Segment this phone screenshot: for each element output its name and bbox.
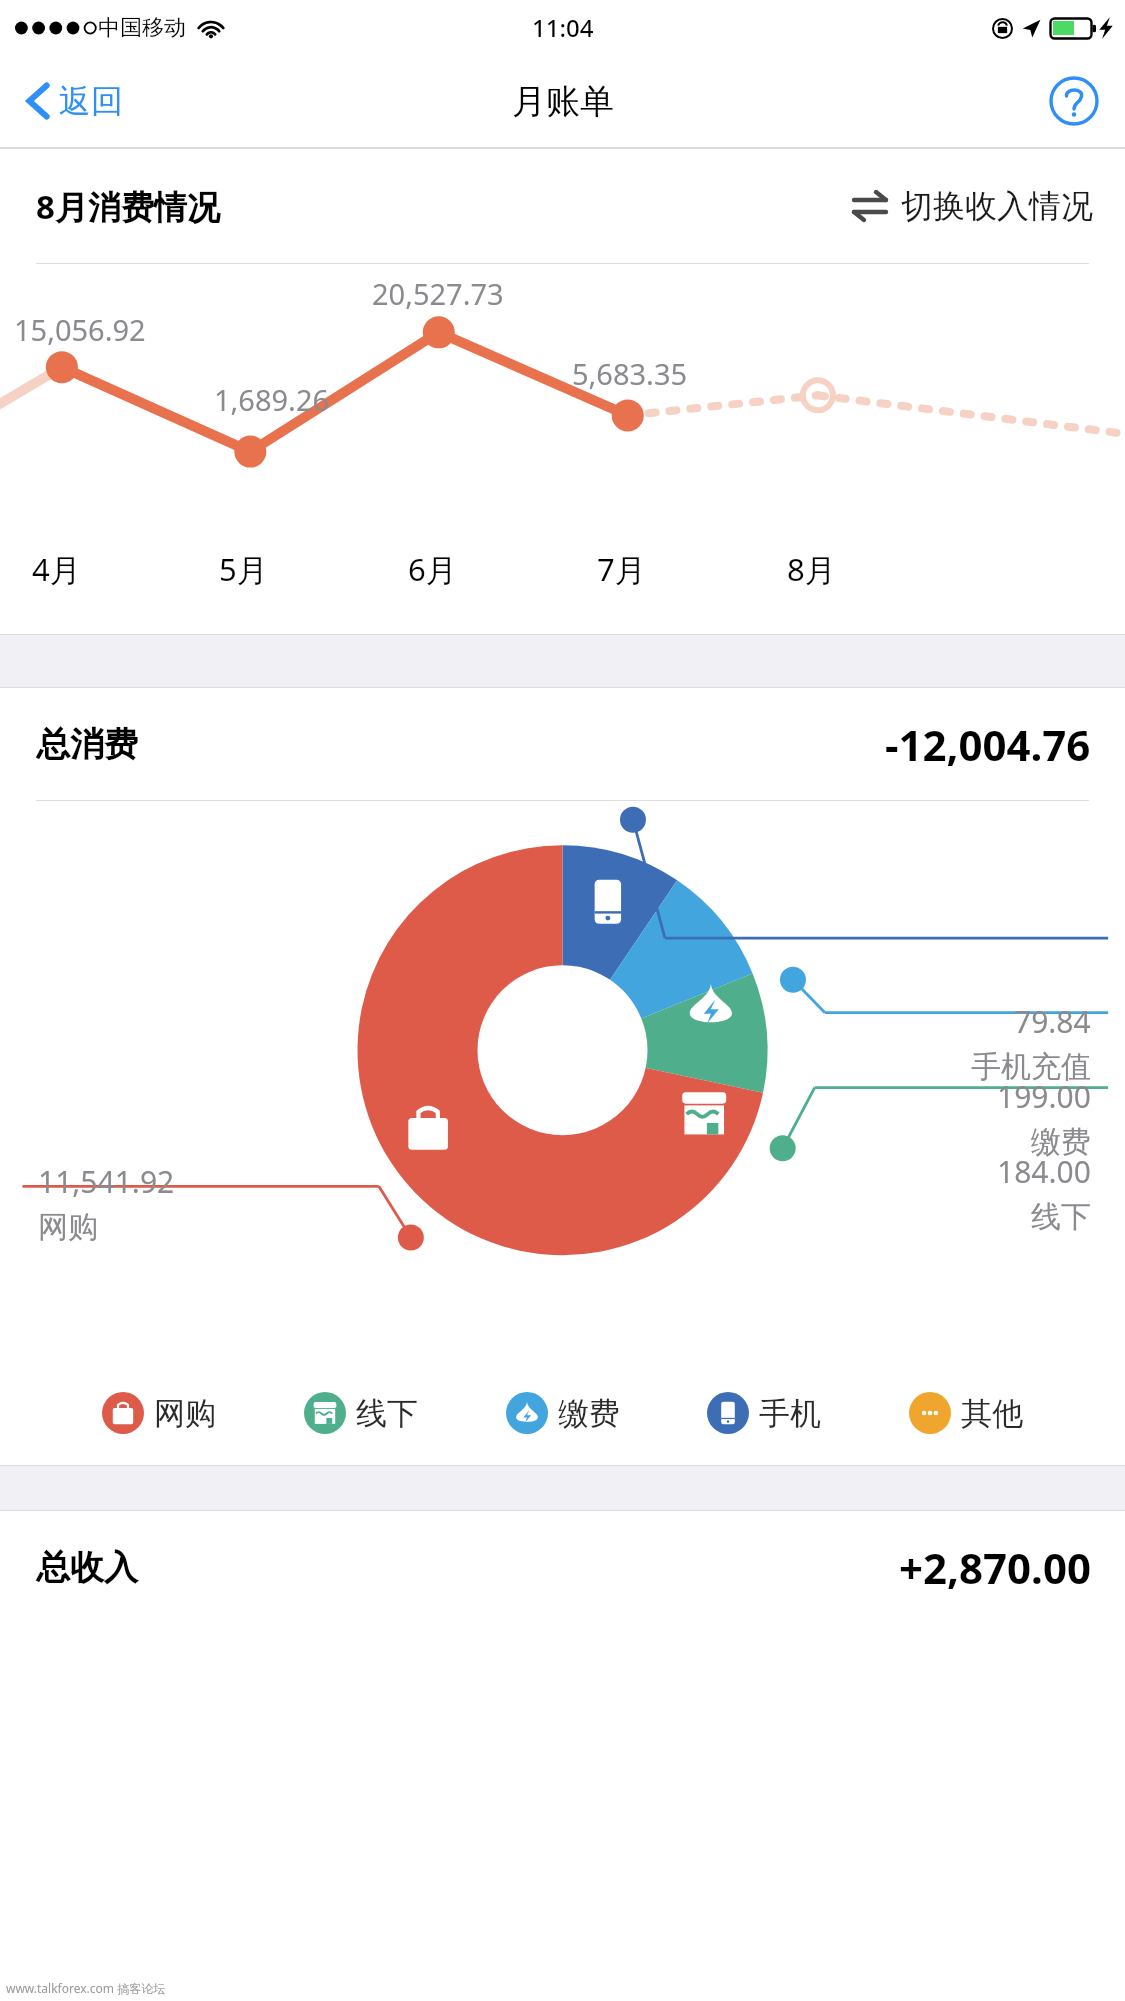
staticText: 5月 — [219, 548, 268, 590]
staticText: 手机 — [759, 1394, 821, 1433]
button[interactable]: 缴费 — [502, 1382, 624, 1444]
staticText: 8月 — [787, 548, 836, 590]
staticText: 缴费 — [558, 1394, 620, 1433]
staticText: 网购 — [38, 1208, 98, 1246]
staticText: 11,541.92 — [38, 1161, 175, 1202]
staticText: 20,527.73 — [372, 274, 504, 313]
button[interactable]: 网购 — [98, 1382, 220, 1444]
staticText: +2,870.00 — [899, 1539, 1091, 1596]
staticText: 其他 — [961, 1394, 1023, 1433]
button[interactable]: 返回 — [0, 70, 141, 132]
staticText: -12,004.76 — [885, 716, 1091, 773]
staticText: 线下 — [1031, 1198, 1091, 1236]
staticText: 15,056.92 — [14, 310, 146, 349]
button[interactable]: 线下 — [300, 1382, 422, 1444]
button[interactable]: 其他 — [905, 1382, 1027, 1444]
staticText: 11:04 — [532, 11, 594, 44]
staticText: 中国移动 — [98, 14, 186, 42]
staticText: 199.00 — [997, 1076, 1091, 1117]
staticText: 7月 — [597, 548, 646, 590]
staticText: 月账单 — [512, 80, 614, 123]
button[interactable]: 手机 — [703, 1382, 825, 1444]
staticText: 返回 — [59, 81, 123, 121]
staticText: 线下 — [356, 1394, 418, 1433]
staticText: 总收入 — [36, 1546, 138, 1589]
staticText: 4月 — [32, 548, 81, 590]
staticText: 总消费 — [36, 723, 138, 766]
staticText: 6月 — [408, 548, 457, 590]
staticText: 79.84 — [1014, 1001, 1091, 1042]
staticText: 5,683.35 — [572, 354, 688, 393]
button[interactable]: 帮助 — [1023, 62, 1125, 140]
staticText: 手机充值 — [971, 1048, 1091, 1086]
staticText: www.talkforex.com 搞客论坛 — [6, 1980, 166, 1996]
staticText: 184.00 — [997, 1151, 1091, 1192]
button[interactable]: 切换收入情况 — [835, 174, 1125, 238]
staticText: 1,689.26 — [214, 380, 330, 419]
staticText: 网购 — [154, 1394, 216, 1433]
staticText: 8月消费情况 — [36, 184, 220, 229]
staticText: 切换收入情况 — [901, 186, 1093, 226]
staticText: 缴费 — [1031, 1123, 1091, 1161]
